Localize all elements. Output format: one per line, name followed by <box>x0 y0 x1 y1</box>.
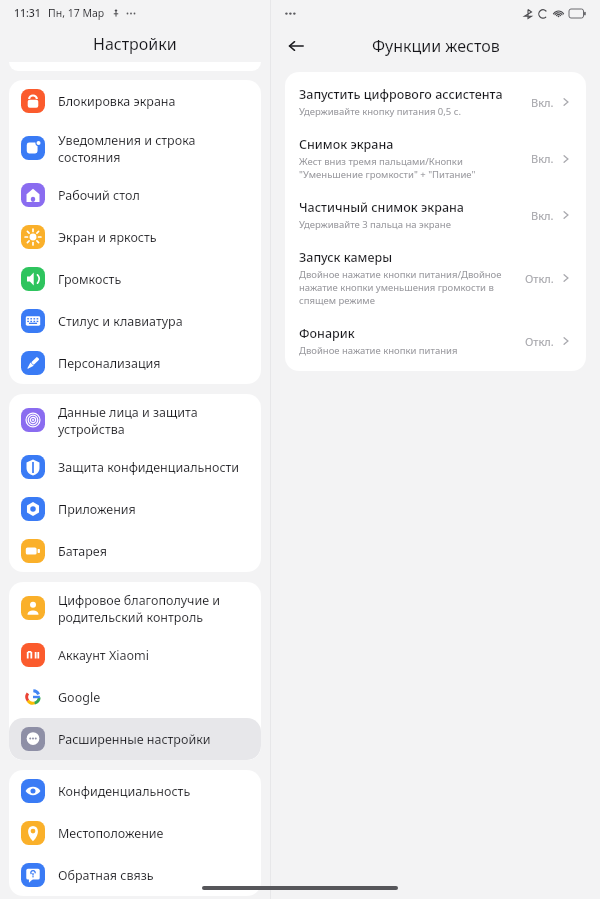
staticText: Аккаунт Xiaomi <box>58 647 149 664</box>
button[interactable]: Аккаунт Xiaomi <box>9 634 261 676</box>
staticText: Фонарик <box>299 325 355 342</box>
button[interactable]: Запуск камеры <box>285 240 586 316</box>
button[interactable]: Цифровое благополучие и родительский кон… <box>9 582 261 634</box>
staticText: Обратная связь <box>58 867 154 884</box>
staticText: Двойное нажатие кнопки питания/Двойное н… <box>299 268 502 307</box>
button[interactable]: Назад <box>281 31 311 61</box>
staticText: Стилус и клавиатура <box>58 313 183 330</box>
button[interactable]: Конфиденциальность <box>9 770 261 812</box>
button[interactable]: Данные лица и защита устройства <box>9 394 261 446</box>
button[interactable]: Частичный снимок экрана <box>285 190 586 240</box>
staticText: Настройки <box>93 33 177 55</box>
button[interactable]: Местоположение <box>9 812 261 854</box>
staticText: Громкость <box>58 271 122 288</box>
staticText: Расширенные настройки <box>58 731 211 748</box>
button[interactable]: Расширенные настройки <box>9 718 261 760</box>
button[interactable]: Персонализация <box>9 342 261 384</box>
button[interactable]: Защита конфиденциальности <box>9 446 261 488</box>
staticText: Данные лица и защита устройства <box>58 404 198 437</box>
staticText: Двойное нажатие кнопки питания <box>299 344 458 357</box>
button[interactable]: Фонарик <box>285 316 586 366</box>
staticText: Конфиденциальность <box>58 783 191 800</box>
staticText: Функции жестов <box>372 35 500 57</box>
staticText: Google <box>58 689 101 706</box>
button[interactable]: Запустить цифрового ассистента <box>285 77 586 127</box>
button[interactable]: Стилус и клавиатура <box>9 300 261 342</box>
staticText: Персонализация <box>58 355 161 372</box>
staticText: Удерживайте 3 пальца на экране <box>299 218 451 231</box>
button[interactable]: Обратная связь <box>9 854 261 896</box>
staticText: Рабочий стол <box>58 187 140 204</box>
button[interactable]: Уведомления и строка состояния <box>9 122 261 174</box>
staticText: Запустить цифрового ассистента <box>299 86 503 103</box>
staticText: Откл. <box>525 334 554 349</box>
staticText: Приложения <box>58 501 136 518</box>
staticText: Блокировка экрана <box>58 93 176 110</box>
staticText: Экран и яркость <box>58 229 157 246</box>
staticText: Защита конфиденциальности <box>58 459 240 476</box>
button[interactable]: Приложения <box>9 488 261 530</box>
button[interactable]: Громкость <box>9 258 261 300</box>
staticText: Цифровое благополучие и родительский кон… <box>58 592 221 625</box>
staticText: Вкл. <box>531 151 554 166</box>
staticText: Вкл. <box>531 95 554 110</box>
staticText: Откл. <box>525 271 554 286</box>
staticText: Удерживайте кнопку питания 0,5 с. <box>299 105 461 118</box>
staticText: Снимок экрана <box>299 136 394 153</box>
button[interactable]: Google <box>9 676 261 718</box>
staticText: Запуск камеры <box>299 249 393 266</box>
button[interactable]: Экран и яркость <box>9 216 261 258</box>
staticText: Жест вниз тремя пальцами/Кнопки "Уменьше… <box>299 155 476 181</box>
staticText: Местоположение <box>58 825 164 842</box>
staticText: 11:31 <box>14 6 41 20</box>
button[interactable]: Блокировка экрана <box>9 80 261 122</box>
staticText: Частичный снимок экрана <box>299 199 464 216</box>
staticText: Батарея <box>58 543 107 560</box>
button[interactable]: Рабочий стол <box>9 174 261 216</box>
staticText: Пн, 17 Мар <box>48 6 105 20</box>
button[interactable]: Снимок экрана <box>285 127 586 190</box>
staticText: Вкл. <box>531 208 554 223</box>
button[interactable]: Батарея <box>9 530 261 572</box>
staticText: Уведомления и строка состояния <box>58 132 196 165</box>
